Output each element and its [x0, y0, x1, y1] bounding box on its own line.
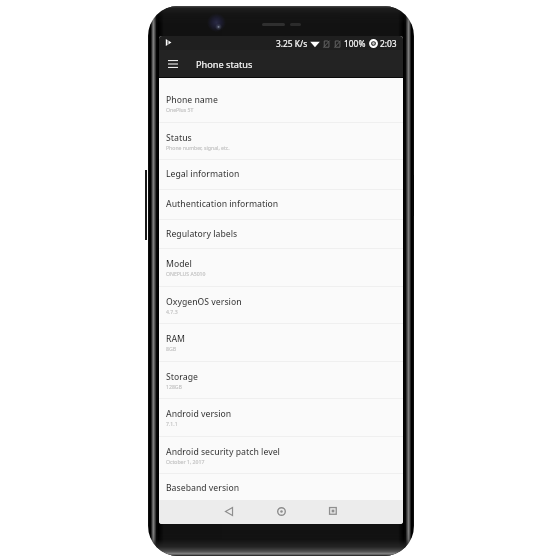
- button[interactable]: Android security patch level: [159, 437, 403, 475]
- staticText: Status: [166, 132, 192, 144]
- staticText: OnePlus 5T: [166, 106, 194, 113]
- button[interactable]: Authentication information: [159, 190, 403, 220]
- staticText: Android version: [166, 408, 232, 420]
- staticText: 4.7.3: [166, 308, 178, 315]
- button[interactable]: Open navigation menu: [163, 50, 183, 78]
- staticText: 8GB: [166, 345, 177, 352]
- staticText: Phone number, signal, etc.: [166, 144, 230, 151]
- staticText: 3.25 K/s: [276, 38, 308, 49]
- button[interactable]: Baseband version: [159, 474, 403, 504]
- button[interactable]: Status: [159, 123, 403, 161]
- staticText: Model: [166, 258, 192, 270]
- staticText: ONEPLUS A5010: [166, 270, 206, 277]
- button[interactable]: RAM: [159, 324, 403, 362]
- staticText: 7.1.1: [166, 420, 178, 427]
- staticText: Regulatory labels: [166, 228, 238, 240]
- staticText: Authentication information: [166, 198, 279, 210]
- staticText: 128GB: [166, 383, 182, 390]
- staticText: Baseband version: [166, 482, 240, 494]
- button[interactable]: Home: [264, 500, 298, 524]
- staticText: Phone status: [196, 58, 253, 71]
- button[interactable]: Android version: [159, 399, 403, 437]
- button[interactable]: Storage: [159, 362, 403, 400]
- staticText: 100%: [344, 38, 366, 49]
- staticText: RAM: [166, 333, 185, 345]
- staticText: Storage: [166, 371, 198, 383]
- staticText: Legal information: [166, 168, 240, 180]
- button[interactable]: Regulatory labels: [159, 220, 403, 250]
- staticText: 2:03: [380, 38, 397, 49]
- staticText: Phone name: [166, 94, 218, 106]
- button[interactable]: Phone name: [159, 85, 403, 123]
- button[interactable]: OxygenOS version: [159, 287, 403, 325]
- button[interactable]: Recent apps: [316, 500, 350, 524]
- staticText: OxygenOS version: [166, 296, 242, 308]
- button[interactable]: Legal information: [159, 160, 403, 190]
- button[interactable]: Model: [159, 249, 403, 287]
- staticText: Android security patch level: [166, 446, 280, 458]
- button[interactable]: Back: [212, 500, 246, 524]
- staticText: October 1, 2017: [166, 458, 205, 465]
